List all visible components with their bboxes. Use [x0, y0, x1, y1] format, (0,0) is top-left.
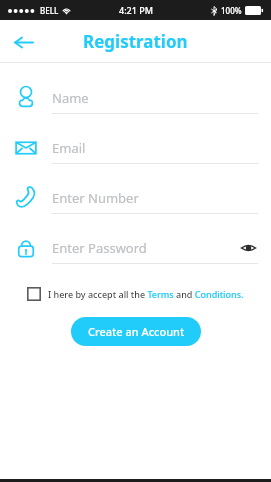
staticText: 4:21 PM [119, 4, 153, 16]
button[interactable]: Enter Number [0, 173, 271, 223]
staticText: Email [52, 139, 86, 157]
staticText: 100% [221, 5, 242, 16]
button[interactable]: Create an Account [71, 317, 201, 346]
staticText: Create an Account [88, 324, 185, 339]
staticText: Enter Password [52, 239, 147, 257]
staticText: Enter Number [52, 189, 139, 207]
staticText: BELL [40, 5, 59, 16]
button[interactable]: Name [0, 73, 271, 123]
button[interactable]: I here by accept all the Terms and Condi… [27, 287, 271, 301]
staticText: Registration [83, 30, 188, 53]
staticText: I here by accept all the Terms and Condi… [48, 288, 244, 300]
button[interactable]: Back [6, 25, 40, 59]
button[interactable]: Email [0, 123, 271, 173]
staticText: Name [52, 89, 89, 107]
button[interactable]: Show password [237, 237, 259, 259]
button[interactable]: Enter Password [0, 223, 271, 273]
